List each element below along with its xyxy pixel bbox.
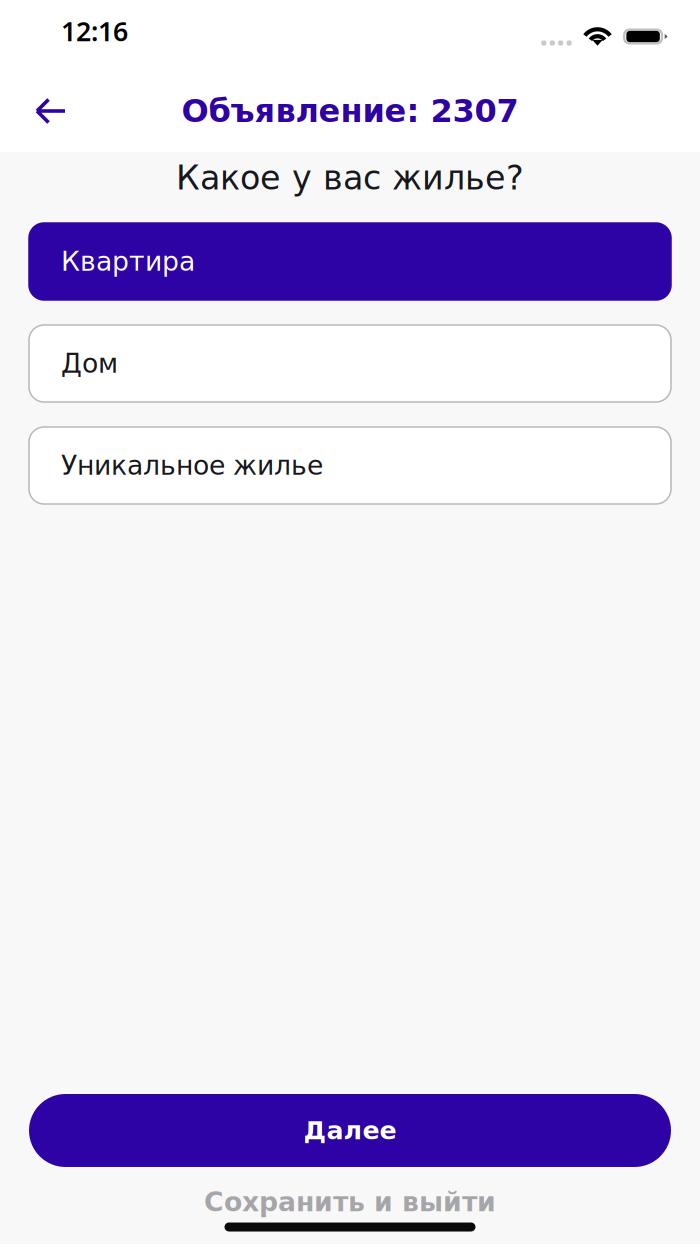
staticText: Какое у вас жилье?: [176, 159, 524, 197]
button[interactable]: Дом: [29, 325, 671, 402]
staticText: Дом: [61, 348, 118, 379]
staticText: Далее: [303, 1116, 396, 1145]
button[interactable]: Назад: [26, 86, 76, 136]
staticText: Сохранить и выйти: [204, 1186, 496, 1217]
button[interactable]: Уникальное жилье: [29, 427, 671, 504]
button[interactable]: Квартира: [29, 223, 671, 300]
button[interactable]: Далее: [29, 1094, 671, 1167]
staticText: Квартира: [61, 246, 195, 277]
button[interactable]: Сохранить и выйти: [0, 1194, 700, 1210]
staticText: 12:16: [61, 13, 128, 49]
staticText: Уникальное жилье: [61, 450, 323, 481]
staticText: Объявление: 2307: [181, 92, 518, 130]
